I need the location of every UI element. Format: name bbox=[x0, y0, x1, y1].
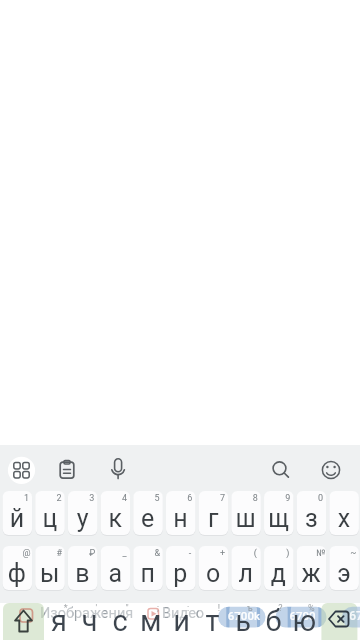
button[interactable] bbox=[35, 491, 65, 535]
button[interactable] bbox=[297, 546, 327, 590]
button[interactable] bbox=[264, 491, 294, 535]
button[interactable] bbox=[52, 456, 81, 485]
button[interactable] bbox=[166, 546, 196, 590]
button[interactable] bbox=[76, 603, 104, 640]
button[interactable] bbox=[107, 603, 135, 640]
button[interactable] bbox=[3, 491, 33, 535]
button[interactable] bbox=[133, 491, 163, 535]
button[interactable] bbox=[101, 546, 131, 590]
button[interactable] bbox=[35, 546, 65, 590]
button[interactable] bbox=[291, 603, 319, 640]
button[interactable] bbox=[133, 546, 163, 590]
button[interactable] bbox=[101, 491, 131, 535]
button[interactable] bbox=[199, 603, 227, 640]
button[interactable] bbox=[3, 603, 44, 640]
button[interactable] bbox=[166, 491, 196, 535]
button[interactable] bbox=[199, 546, 229, 590]
button[interactable] bbox=[68, 491, 98, 535]
button[interactable] bbox=[231, 546, 261, 590]
button[interactable] bbox=[321, 603, 357, 640]
button[interactable] bbox=[3, 546, 33, 590]
button[interactable] bbox=[297, 491, 327, 535]
button[interactable] bbox=[265, 456, 294, 485]
button[interactable] bbox=[7, 456, 36, 485]
button[interactable] bbox=[329, 491, 359, 535]
button[interactable] bbox=[260, 603, 288, 640]
button[interactable] bbox=[231, 491, 261, 535]
button[interactable] bbox=[264, 546, 294, 590]
button[interactable] bbox=[199, 491, 229, 535]
button[interactable] bbox=[137, 603, 165, 640]
button[interactable] bbox=[45, 603, 73, 640]
button[interactable] bbox=[68, 546, 98, 590]
button[interactable] bbox=[229, 603, 257, 640]
button[interactable] bbox=[103, 456, 132, 485]
button[interactable] bbox=[168, 603, 196, 640]
button[interactable] bbox=[316, 456, 345, 485]
button[interactable] bbox=[329, 546, 359, 590]
